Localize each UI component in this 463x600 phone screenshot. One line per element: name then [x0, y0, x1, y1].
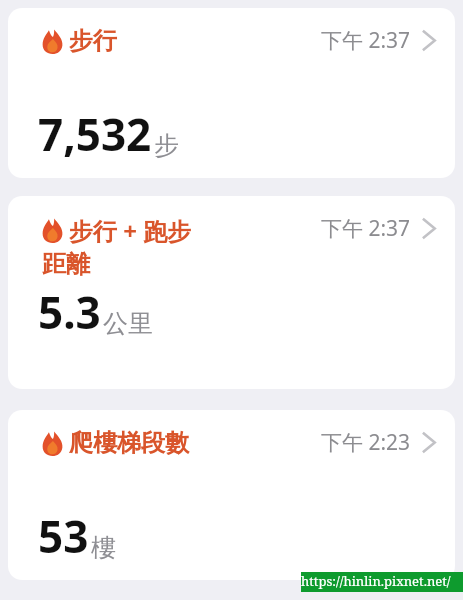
staticText: 步	[154, 130, 179, 161]
staticText: 公里	[103, 308, 153, 339]
staticText: 53	[38, 506, 89, 566]
staticText: 7,532	[38, 104, 152, 164]
staticText: 步行 + 跑步	[69, 214, 192, 247]
staticText: 下午 2:37	[321, 214, 411, 243]
button[interactable]: 爬樓梯段數 53 樓	[8, 410, 455, 580]
staticText: 步行	[69, 26, 117, 56]
staticText: https://hinlin.pixnet.net/blog	[301, 572, 463, 592]
staticText: 距離	[42, 249, 90, 279]
staticText: 下午 2:37	[321, 26, 411, 55]
staticText: 下午 2:23	[321, 428, 411, 457]
staticText: 5.3	[38, 282, 101, 342]
button[interactable]: 步行加跑步距離 5.3 公里	[8, 196, 455, 389]
staticText: 樓	[91, 532, 116, 563]
button[interactable]: 步行 7,532 步	[8, 8, 455, 178]
staticText: 爬樓梯段數	[69, 428, 189, 458]
